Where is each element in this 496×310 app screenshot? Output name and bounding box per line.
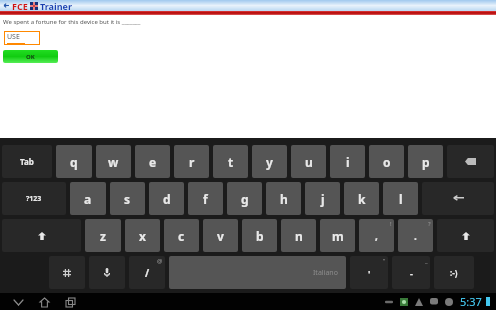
button[interactable]: ?123 xyxy=(2,182,66,215)
button[interactable]: l xyxy=(383,182,418,215)
staticText: o xyxy=(383,154,391,170)
staticText: ' xyxy=(368,267,371,279)
staticText: :-) xyxy=(450,267,458,278)
staticText: ? xyxy=(428,220,431,228)
button[interactable]: d xyxy=(149,182,184,215)
staticText: m xyxy=(332,228,344,244)
button[interactable]: r xyxy=(174,145,209,178)
staticText: r xyxy=(189,154,195,170)
staticText: z xyxy=(100,228,106,244)
staticText: USE xyxy=(7,32,20,42)
button[interactable]: Settings xyxy=(49,256,85,289)
staticText: y xyxy=(266,154,273,170)
staticText: v xyxy=(217,228,224,244)
button[interactable]: v xyxy=(203,219,238,252)
button[interactable]: Recents xyxy=(62,294,78,310)
staticText: Tab xyxy=(20,156,34,167)
staticText: Trainer xyxy=(40,0,72,11)
button[interactable]: o xyxy=(369,145,404,178)
button[interactable]: - xyxy=(392,256,430,289)
staticText: t xyxy=(228,154,234,170)
button[interactable]: Back xyxy=(2,1,11,10)
staticText: OK xyxy=(26,53,35,61)
staticText: - xyxy=(410,267,413,279)
staticText: g xyxy=(241,191,249,207)
staticText: q xyxy=(70,154,78,170)
staticText: e xyxy=(149,154,157,170)
button[interactable]: g xyxy=(227,182,262,215)
staticText: s xyxy=(124,191,131,207)
button[interactable]: Shift xyxy=(2,219,81,252)
button[interactable]: , xyxy=(359,219,394,252)
staticText: / xyxy=(145,266,150,280)
button[interactable]: Enter xyxy=(422,182,494,215)
staticText: u xyxy=(305,154,313,170)
button[interactable]: n xyxy=(281,219,316,252)
button[interactable]: / xyxy=(129,256,165,289)
staticText: ?123 xyxy=(26,194,42,204)
button[interactable]: a xyxy=(70,182,106,215)
button[interactable]: Backspace xyxy=(447,145,494,178)
staticText: w xyxy=(108,154,119,170)
staticText: l xyxy=(399,191,403,207)
button[interactable]: h xyxy=(266,182,301,215)
button[interactable]: f xyxy=(188,182,223,215)
staticText: Italiano xyxy=(313,268,338,278)
staticText: c xyxy=(178,228,185,244)
button[interactable]: w xyxy=(96,145,131,178)
button[interactable]: Home xyxy=(36,294,52,310)
button[interactable]: s xyxy=(110,182,145,215)
button[interactable]: . xyxy=(398,219,433,252)
button[interactable]: k xyxy=(344,182,379,215)
staticText: h xyxy=(280,191,288,207)
button[interactable]: USE xyxy=(4,31,40,45)
button[interactable]: u xyxy=(291,145,326,178)
button[interactable]: :-) xyxy=(434,256,474,289)
staticText: 5:37 xyxy=(460,294,482,309)
staticText: _ xyxy=(425,257,428,265)
staticText: f xyxy=(203,191,208,207)
button[interactable]: Space xyxy=(169,256,346,289)
button[interactable]: t xyxy=(213,145,248,178)
button[interactable]: y xyxy=(252,145,287,178)
button[interactable]: ' xyxy=(350,256,388,289)
staticText: d xyxy=(163,191,171,207)
button[interactable]: z xyxy=(85,219,121,252)
staticText: b xyxy=(256,228,264,244)
button[interactable]: p xyxy=(408,145,443,178)
staticText: k xyxy=(358,191,366,207)
staticText: FCE xyxy=(12,0,28,11)
button[interactable]: b xyxy=(242,219,277,252)
button[interactable]: e xyxy=(135,145,170,178)
staticText: , xyxy=(375,229,378,243)
button[interactable]: Tab xyxy=(2,145,52,178)
staticText: n xyxy=(295,228,303,244)
button[interactable]: q xyxy=(56,145,92,178)
button[interactable]: x xyxy=(125,219,160,252)
staticText: ! xyxy=(390,220,392,228)
staticText: " xyxy=(383,257,386,265)
button[interactable]: i xyxy=(330,145,365,178)
button[interactable]: Shift xyxy=(437,219,494,252)
staticText: @ xyxy=(157,257,163,265)
button[interactable]: Voice input xyxy=(89,256,125,289)
staticText: a xyxy=(84,191,92,207)
button[interactable]: OK xyxy=(3,50,58,63)
button[interactable]: m xyxy=(320,219,355,252)
button[interactable]: c xyxy=(164,219,199,252)
staticText: . xyxy=(414,229,417,243)
button[interactable]: j xyxy=(305,182,340,215)
staticText: We spent a fortune for this device but i… xyxy=(3,18,141,26)
staticText: j xyxy=(321,191,325,207)
button[interactable]: Back xyxy=(10,294,26,310)
staticText: x xyxy=(139,228,146,244)
staticText: i xyxy=(346,154,350,170)
staticText: p xyxy=(422,154,430,170)
